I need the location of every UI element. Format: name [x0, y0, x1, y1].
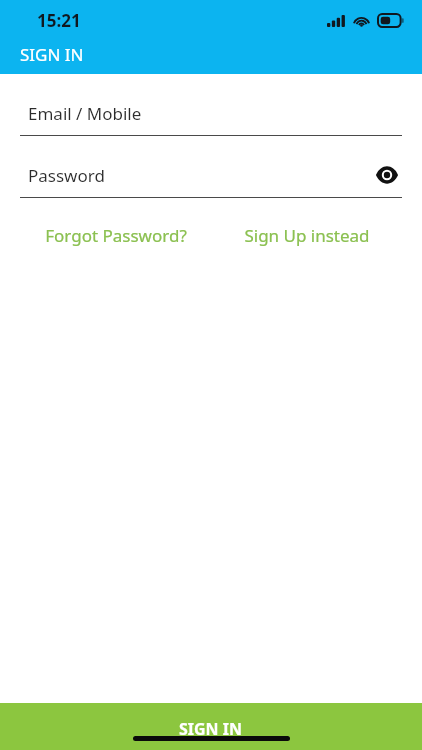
button[interactable]: SIGN IN: [0, 703, 422, 750]
button[interactable]: Show password: [372, 160, 402, 190]
staticText: 15:21: [37, 9, 81, 32]
button[interactable]: Password: [0, 160, 422, 198]
staticText: Forgot Password?: [45, 224, 187, 247]
button[interactable]: Forgot Password?: [20, 220, 211, 251]
staticText: Email / Mobile: [28, 102, 142, 125]
staticText: Sign Up instead: [244, 224, 370, 247]
button[interactable]: Email / Mobile: [0, 98, 422, 136]
staticText: Password: [28, 164, 105, 187]
staticText: SIGN IN: [179, 718, 243, 740]
staticText: SIGN IN: [20, 43, 84, 66]
button[interactable]: Sign Up instead: [211, 220, 402, 251]
